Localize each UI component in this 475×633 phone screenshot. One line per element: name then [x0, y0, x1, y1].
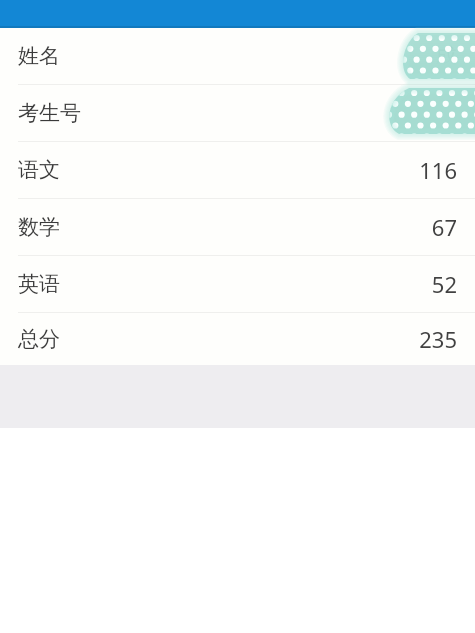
- staticText: 0821: [406, 98, 457, 128]
- button[interactable]: 英语: [0, 256, 475, 312]
- button[interactable]: 总分: [0, 313, 475, 365]
- staticText: 成: [435, 42, 457, 70]
- staticText: 语文: [18, 157, 60, 183]
- button[interactable]: 数学: [0, 199, 475, 255]
- staticText: 116: [419, 155, 457, 185]
- staticText: 英语: [18, 271, 60, 297]
- button[interactable]: 考生号: [0, 85, 475, 141]
- button[interactable]: 姓名: [0, 28, 475, 84]
- staticText: 数学: [18, 214, 60, 240]
- staticText: 235: [419, 324, 457, 354]
- staticText: 总分: [18, 326, 60, 352]
- staticText: 考生号: [18, 100, 81, 126]
- staticText: 52: [431, 269, 457, 299]
- button[interactable]: 语文: [0, 142, 475, 198]
- staticText: 67: [431, 212, 457, 242]
- staticText: 姓名: [18, 43, 60, 69]
